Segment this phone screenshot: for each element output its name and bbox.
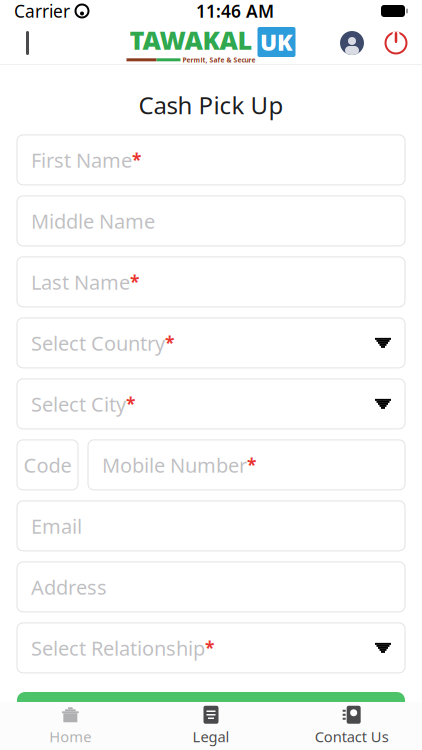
staticText: Cash Pick Up [138,89,283,121]
button[interactable]: Log out [374,22,418,64]
staticText: Code [23,452,71,478]
button[interactable]: Submit [17,692,405,738]
button[interactable]: Code [17,440,78,490]
staticText: Permit, Safe & Secure [180,55,255,64]
button[interactable]: Back [4,22,56,64]
staticText: * [247,453,256,476]
button[interactable]: Last Name [17,257,405,307]
staticText: Select Country [31,330,165,356]
staticText: Address [31,574,107,600]
staticText: Home [49,727,91,746]
staticText: First Name [31,147,132,173]
staticText: Carrier [14,0,70,22]
staticText: * [126,392,135,415]
staticText: * [205,636,214,659]
staticText: Mobile Number [102,452,247,478]
staticText: Last Name [31,269,130,295]
staticText: 11:46 AM [196,0,274,22]
staticText: Contact Us [315,727,389,746]
button[interactable]: First Name [17,135,405,185]
button[interactable]: Select City [17,379,405,429]
staticText: * [130,270,139,293]
button[interactable]: Home [0,702,141,750]
staticText: Middle Name [31,208,155,234]
staticText: * [165,331,174,354]
button[interactable]: Middle Name [17,196,405,246]
button[interactable]: Select Relationship [17,623,405,673]
button[interactable]: Email [17,501,405,551]
staticText: Legal [192,727,229,746]
staticText: Email [31,513,82,539]
staticText: Select Relationship [31,635,205,661]
staticText: Select City [31,391,126,417]
button[interactable]: Address [17,562,405,612]
staticText: * [132,148,141,171]
button[interactable]: Select Country [17,318,405,368]
button[interactable]: Contact Us [281,702,422,750]
staticText: UK [260,27,293,57]
button[interactable]: Mobile Number [88,440,405,490]
button[interactable]: Profile [330,22,374,64]
staticText: TAWAKAL [129,23,252,57]
button[interactable]: Legal [141,702,281,750]
